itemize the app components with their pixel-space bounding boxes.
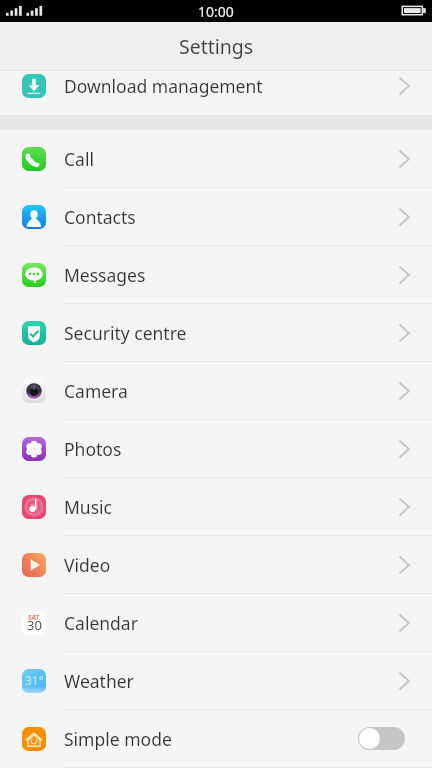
button[interactable]: Music xyxy=(0,478,432,536)
staticText: 30 xyxy=(27,616,42,634)
staticText: Call xyxy=(64,147,94,171)
staticText: Simple mode xyxy=(64,727,172,751)
staticText: Weather xyxy=(64,669,134,693)
staticText: Messages xyxy=(64,263,146,287)
staticText: Settings xyxy=(179,33,254,60)
staticText: Camera xyxy=(64,379,128,403)
staticText: Photos xyxy=(64,437,122,461)
button[interactable]: Contacts xyxy=(0,188,432,246)
button[interactable]: Call xyxy=(0,130,432,188)
staticText: Contacts xyxy=(64,205,136,229)
button[interactable]: Photos xyxy=(0,420,432,478)
staticText: Music xyxy=(64,495,112,519)
staticText: 31° xyxy=(25,672,44,688)
button[interactable]: 31° xyxy=(0,652,432,710)
button[interactable]: SAT xyxy=(0,594,432,652)
button[interactable]: Download management xyxy=(0,71,432,115)
staticText: SAT xyxy=(28,613,40,622)
button[interactable]: Toggle Simple mode xyxy=(358,727,405,750)
staticText: Calendar xyxy=(64,611,138,635)
staticText: Video xyxy=(64,553,111,577)
button[interactable]: Simple mode xyxy=(0,710,432,768)
button[interactable]: Video xyxy=(0,536,432,594)
staticText: 10:00 xyxy=(198,2,234,21)
button[interactable]: Security centre xyxy=(0,304,432,362)
staticText: Download management xyxy=(64,74,263,98)
staticText: Security centre xyxy=(64,321,187,345)
button[interactable]: Messages xyxy=(0,246,432,304)
button[interactable]: Camera xyxy=(0,362,432,420)
